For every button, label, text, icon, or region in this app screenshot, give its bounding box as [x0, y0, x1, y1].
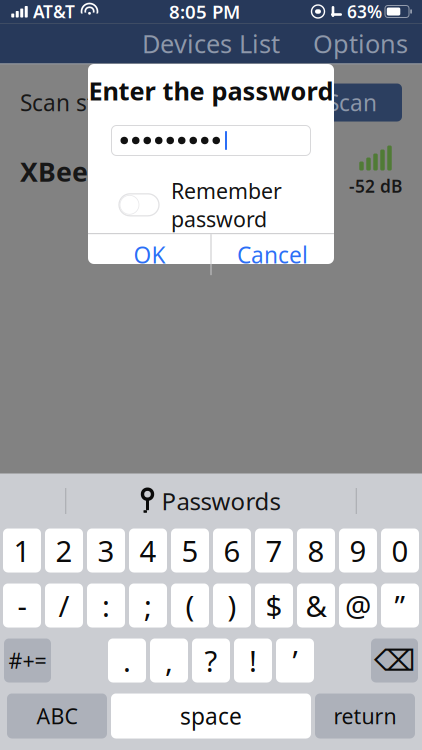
button[interactable]: Cancel [211, 234, 333, 275]
button[interactable]: 1 [3, 528, 41, 572]
staticText: OK [133, 240, 165, 270]
staticText: & [305, 586, 326, 625]
staticText: return [333, 702, 396, 730]
staticText: ’ [292, 641, 297, 680]
staticText: / [58, 586, 69, 625]
button[interactable]: ) [213, 583, 251, 627]
staticText: Options [313, 27, 408, 60]
staticText: Enter the password [88, 74, 333, 107]
staticText: 6 [223, 531, 240, 570]
staticText: Scan stopped [20, 87, 164, 117]
staticText: 3 [97, 531, 114, 570]
button[interactable]: $ [255, 583, 293, 627]
button[interactable]: space [111, 693, 311, 738]
staticText: space [180, 701, 242, 731]
staticText: 5 [181, 531, 198, 570]
button[interactable]: , [150, 638, 188, 682]
button[interactable]: ; [129, 583, 167, 627]
staticText: ABC [36, 702, 77, 730]
staticText: AT&T [33, 0, 75, 23]
staticText: ? [204, 641, 217, 680]
button[interactable]: 4 [129, 528, 167, 572]
staticText: , [165, 641, 173, 680]
button[interactable]: @ [339, 583, 377, 627]
staticText: XBee3 [20, 154, 103, 189]
staticText: ) [227, 586, 236, 625]
staticText: Scan [327, 87, 377, 117]
button[interactable]: 8 [297, 528, 335, 572]
staticText: Remember password [171, 176, 282, 233]
staticText: @ [345, 586, 371, 625]
staticText: #+= [8, 646, 46, 675]
staticText: ! [249, 641, 257, 680]
staticText: - [17, 586, 26, 625]
button[interactable]: Scan [302, 83, 402, 121]
button[interactable]: 6 [213, 528, 251, 572]
button[interactable]: ? [192, 638, 230, 682]
staticText: ; [144, 586, 152, 625]
staticText: . [123, 641, 131, 680]
staticText: 0 [391, 531, 408, 570]
button[interactable]: 9 [339, 528, 377, 572]
staticText: ⌫ [374, 644, 415, 677]
staticText: ” [394, 586, 405, 625]
staticText: -52 dB [349, 174, 402, 197]
button[interactable]: OK [88, 234, 210, 275]
staticText: Devices List [142, 27, 280, 60]
button[interactable]: ” [381, 583, 419, 627]
button[interactable]: return [315, 693, 415, 738]
button[interactable]: ( [171, 583, 209, 627]
button[interactable]: Options [299, 18, 422, 69]
button[interactable]: Passwords [131, 481, 290, 521]
button[interactable]: & [297, 583, 335, 627]
staticText: 63% [347, 0, 382, 23]
button[interactable]: Delete [371, 638, 418, 682]
button[interactable]: ’ [276, 638, 314, 682]
staticText: 7 [265, 531, 282, 570]
button[interactable]: 0 [381, 528, 419, 572]
button[interactable]: : [87, 583, 125, 627]
staticText: Passwords [161, 485, 280, 517]
staticText: 8:05 PM [169, 0, 240, 24]
staticText: 4 [139, 531, 156, 570]
staticText: 8 [307, 531, 324, 570]
button[interactable]: ABC [7, 693, 107, 738]
button[interactable]: . [108, 638, 146, 682]
button[interactable]: ! [234, 638, 272, 682]
staticText: : [102, 586, 110, 625]
button[interactable]: 5 [171, 528, 209, 572]
button[interactable]: 3 [87, 528, 125, 572]
button[interactable]: #+= [4, 638, 51, 682]
staticText: $ [265, 586, 282, 625]
button[interactable]: 2 [45, 528, 83, 572]
button[interactable]: / [45, 583, 83, 627]
staticText: ( [185, 586, 194, 625]
staticText: Cancel [237, 240, 308, 270]
button[interactable]: 7 [255, 528, 293, 572]
staticText: 1 [13, 531, 30, 570]
staticText: 2 [55, 531, 72, 570]
staticText: 9 [349, 531, 366, 570]
button[interactable]: Remember password toggle [119, 194, 159, 216]
button[interactable]: - [3, 583, 41, 627]
